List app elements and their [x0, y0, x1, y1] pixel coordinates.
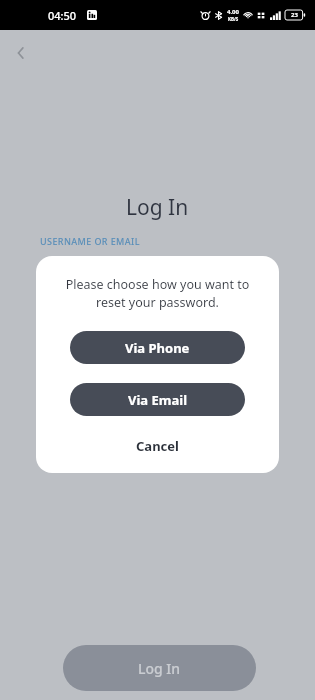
staticText: Via Phone — [125, 339, 190, 357]
button[interactable]: Cancel — [118, 432, 197, 460]
staticText: 04:50 — [48, 8, 77, 23]
staticText: Log In — [126, 193, 189, 222]
staticText: 4.00 — [227, 8, 239, 16]
button[interactable]: Via Phone — [70, 331, 245, 364]
button[interactable]: Via Email — [70, 383, 245, 416]
staticText: Please choose how you want to reset your… — [48, 276, 267, 311]
staticText: 23 — [291, 11, 298, 19]
button[interactable]: Back — [4, 36, 38, 70]
staticText: USERNAME OR EMAIL — [40, 235, 140, 247]
staticText: Log In — [138, 659, 181, 678]
staticText: KB/S — [228, 16, 239, 22]
button[interactable]: Log In — [63, 645, 256, 691]
staticText: Cancel — [136, 437, 179, 455]
staticText: Via Email — [128, 391, 188, 409]
